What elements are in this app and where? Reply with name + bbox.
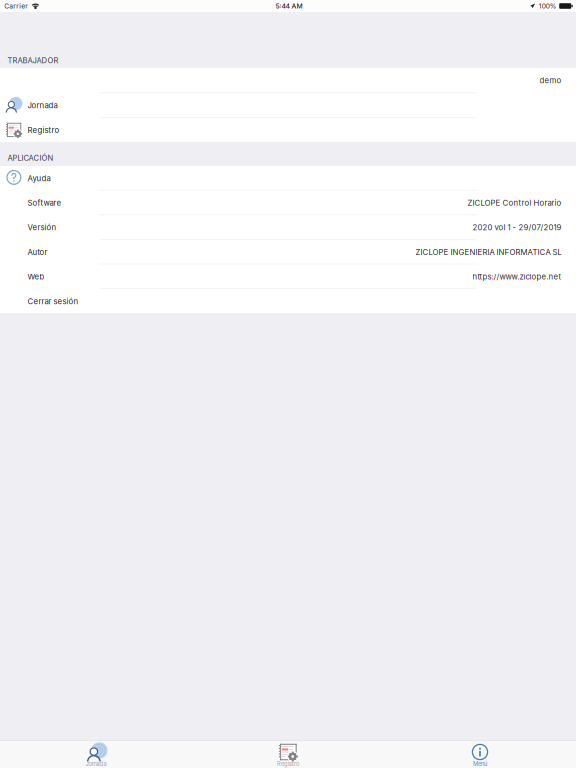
button[interactable]: Ayuda <box>0 166 576 191</box>
staticText: Menú <box>473 760 487 767</box>
button[interactable]: Autor <box>0 240 576 264</box>
staticText: ZICLOPE Control Horario <box>468 198 562 208</box>
staticText: Autor <box>27 247 47 257</box>
staticText: Web <box>27 272 44 281</box>
staticText: Software <box>27 198 61 208</box>
staticText: Ayuda <box>27 174 50 183</box>
staticText: 5:44 AM <box>275 2 302 10</box>
staticText: Registro <box>277 760 299 767</box>
button[interactable]: Versión <box>0 215 576 240</box>
button[interactable]: Registro <box>0 118 576 142</box>
button[interactable]: Registro <box>224 741 352 768</box>
staticText: TRABAJADOR <box>7 56 58 65</box>
staticText: demo <box>540 76 562 85</box>
staticText: APLICACIÓN <box>7 153 53 163</box>
staticText: Registro <box>27 125 59 135</box>
staticText: Carrier <box>4 2 28 10</box>
staticText: https://www.ziclope.net <box>473 272 562 281</box>
staticText: ZICLOPE INGENIERIA INFORMATICA SL <box>416 247 562 257</box>
staticText: Versión <box>27 223 56 232</box>
button[interactable]: Web <box>0 264 576 289</box>
staticText: Jornada <box>85 760 106 767</box>
button[interactable]: Usuario demo <box>0 68 576 93</box>
staticText: Jornada <box>27 101 57 110</box>
button[interactable]: Cerrar sesión <box>0 289 576 314</box>
button[interactable]: Menú <box>416 741 544 768</box>
button[interactable]: Jornada <box>32 741 160 768</box>
staticText: 100% <box>539 2 557 10</box>
button[interactable]: Jornada <box>0 93 576 118</box>
button[interactable]: Software <box>0 191 576 215</box>
staticText: Cerrar sesión <box>27 297 78 306</box>
staticText: 2020 vol 1 - 29/07/2019 <box>473 223 562 232</box>
